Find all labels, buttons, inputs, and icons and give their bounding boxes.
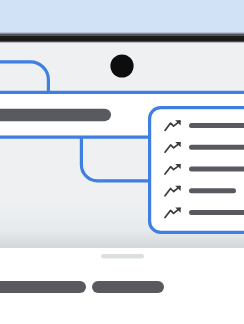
button[interactable]: Trending items card: [148, 106, 244, 234]
button[interactable]: Primary action: [0, 281, 86, 293]
button[interactable]: Secondary action: [92, 281, 164, 293]
